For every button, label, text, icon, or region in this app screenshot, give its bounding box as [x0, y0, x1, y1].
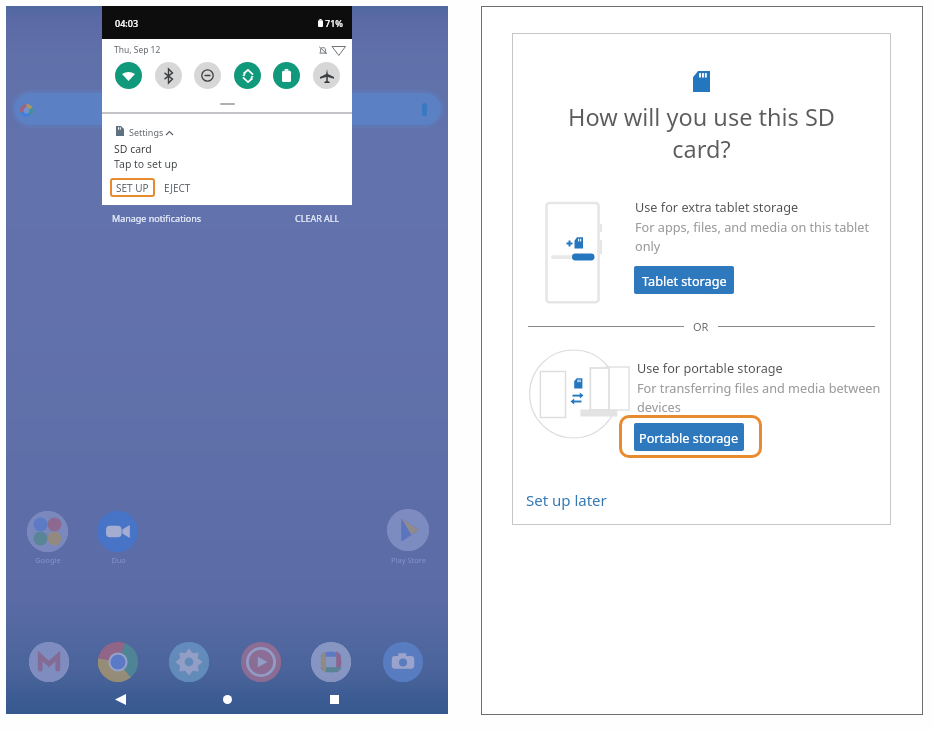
button[interactable]: App icon — [241, 642, 281, 682]
button[interactable]: Settings — [102, 114, 352, 205]
staticText: Thu, Sep 12 — [114, 44, 161, 56]
button[interactable]: App icon — [29, 642, 69, 682]
button[interactable]: Wi-Fi — [115, 62, 142, 89]
button[interactable]: App icon — [97, 511, 138, 552]
staticText: SD card — [114, 142, 152, 156]
button[interactable]: Portable storage — [634, 423, 744, 451]
staticText: Duo — [111, 555, 126, 565]
button[interactable]: Battery saver — [273, 62, 300, 89]
staticText: Tablet storage — [642, 272, 727, 289]
button[interactable]: Auto-rotate — [234, 62, 261, 89]
staticText: 04:03 — [115, 17, 139, 29]
button[interactable]: App icon — [383, 642, 423, 682]
button[interactable]: App icon — [27, 511, 68, 552]
staticText: 71% — [325, 17, 343, 29]
button[interactable]: Back — [107, 686, 133, 712]
button[interactable]: Bluetooth — [155, 62, 182, 89]
staticText: How will you use this SD card? — [512, 101, 891, 165]
staticText: OR — [693, 319, 709, 334]
button[interactable]: Recents — [321, 686, 347, 712]
button[interactable]: App icon — [98, 642, 138, 682]
button[interactable]: Tablet storage — [634, 266, 734, 294]
button[interactable]: App icon — [387, 509, 429, 551]
staticText: Use for portable storage — [637, 359, 783, 376]
staticText: Play Store — [391, 555, 426, 565]
staticText: Tap to set up — [114, 157, 178, 171]
button[interactable]: App icon — [169, 642, 209, 682]
staticText: For apps, files, and media on this table… — [635, 218, 870, 255]
button[interactable]: CLEAR ALL — [295, 212, 340, 224]
button[interactable]: SET UP — [110, 178, 155, 197]
staticText: Use for extra tablet storage — [635, 198, 799, 215]
staticText: Settings — [129, 126, 164, 138]
staticText: Google — [35, 555, 61, 565]
button[interactable]: EJECT — [159, 178, 195, 197]
button[interactable]: Set up later — [526, 490, 607, 510]
staticText: EJECT — [164, 181, 191, 195]
button[interactable]: Manage notifications — [112, 212, 202, 224]
button[interactable]: Do not disturb — [194, 62, 221, 89]
staticText: SET UP — [116, 181, 149, 195]
staticText: For transferring files and media between… — [637, 379, 881, 416]
button[interactable]: Airplane mode — [313, 62, 340, 89]
button[interactable]: App icon — [311, 642, 351, 682]
button[interactable]: Home — [214, 686, 240, 712]
staticText: Portable storage — [639, 429, 739, 446]
